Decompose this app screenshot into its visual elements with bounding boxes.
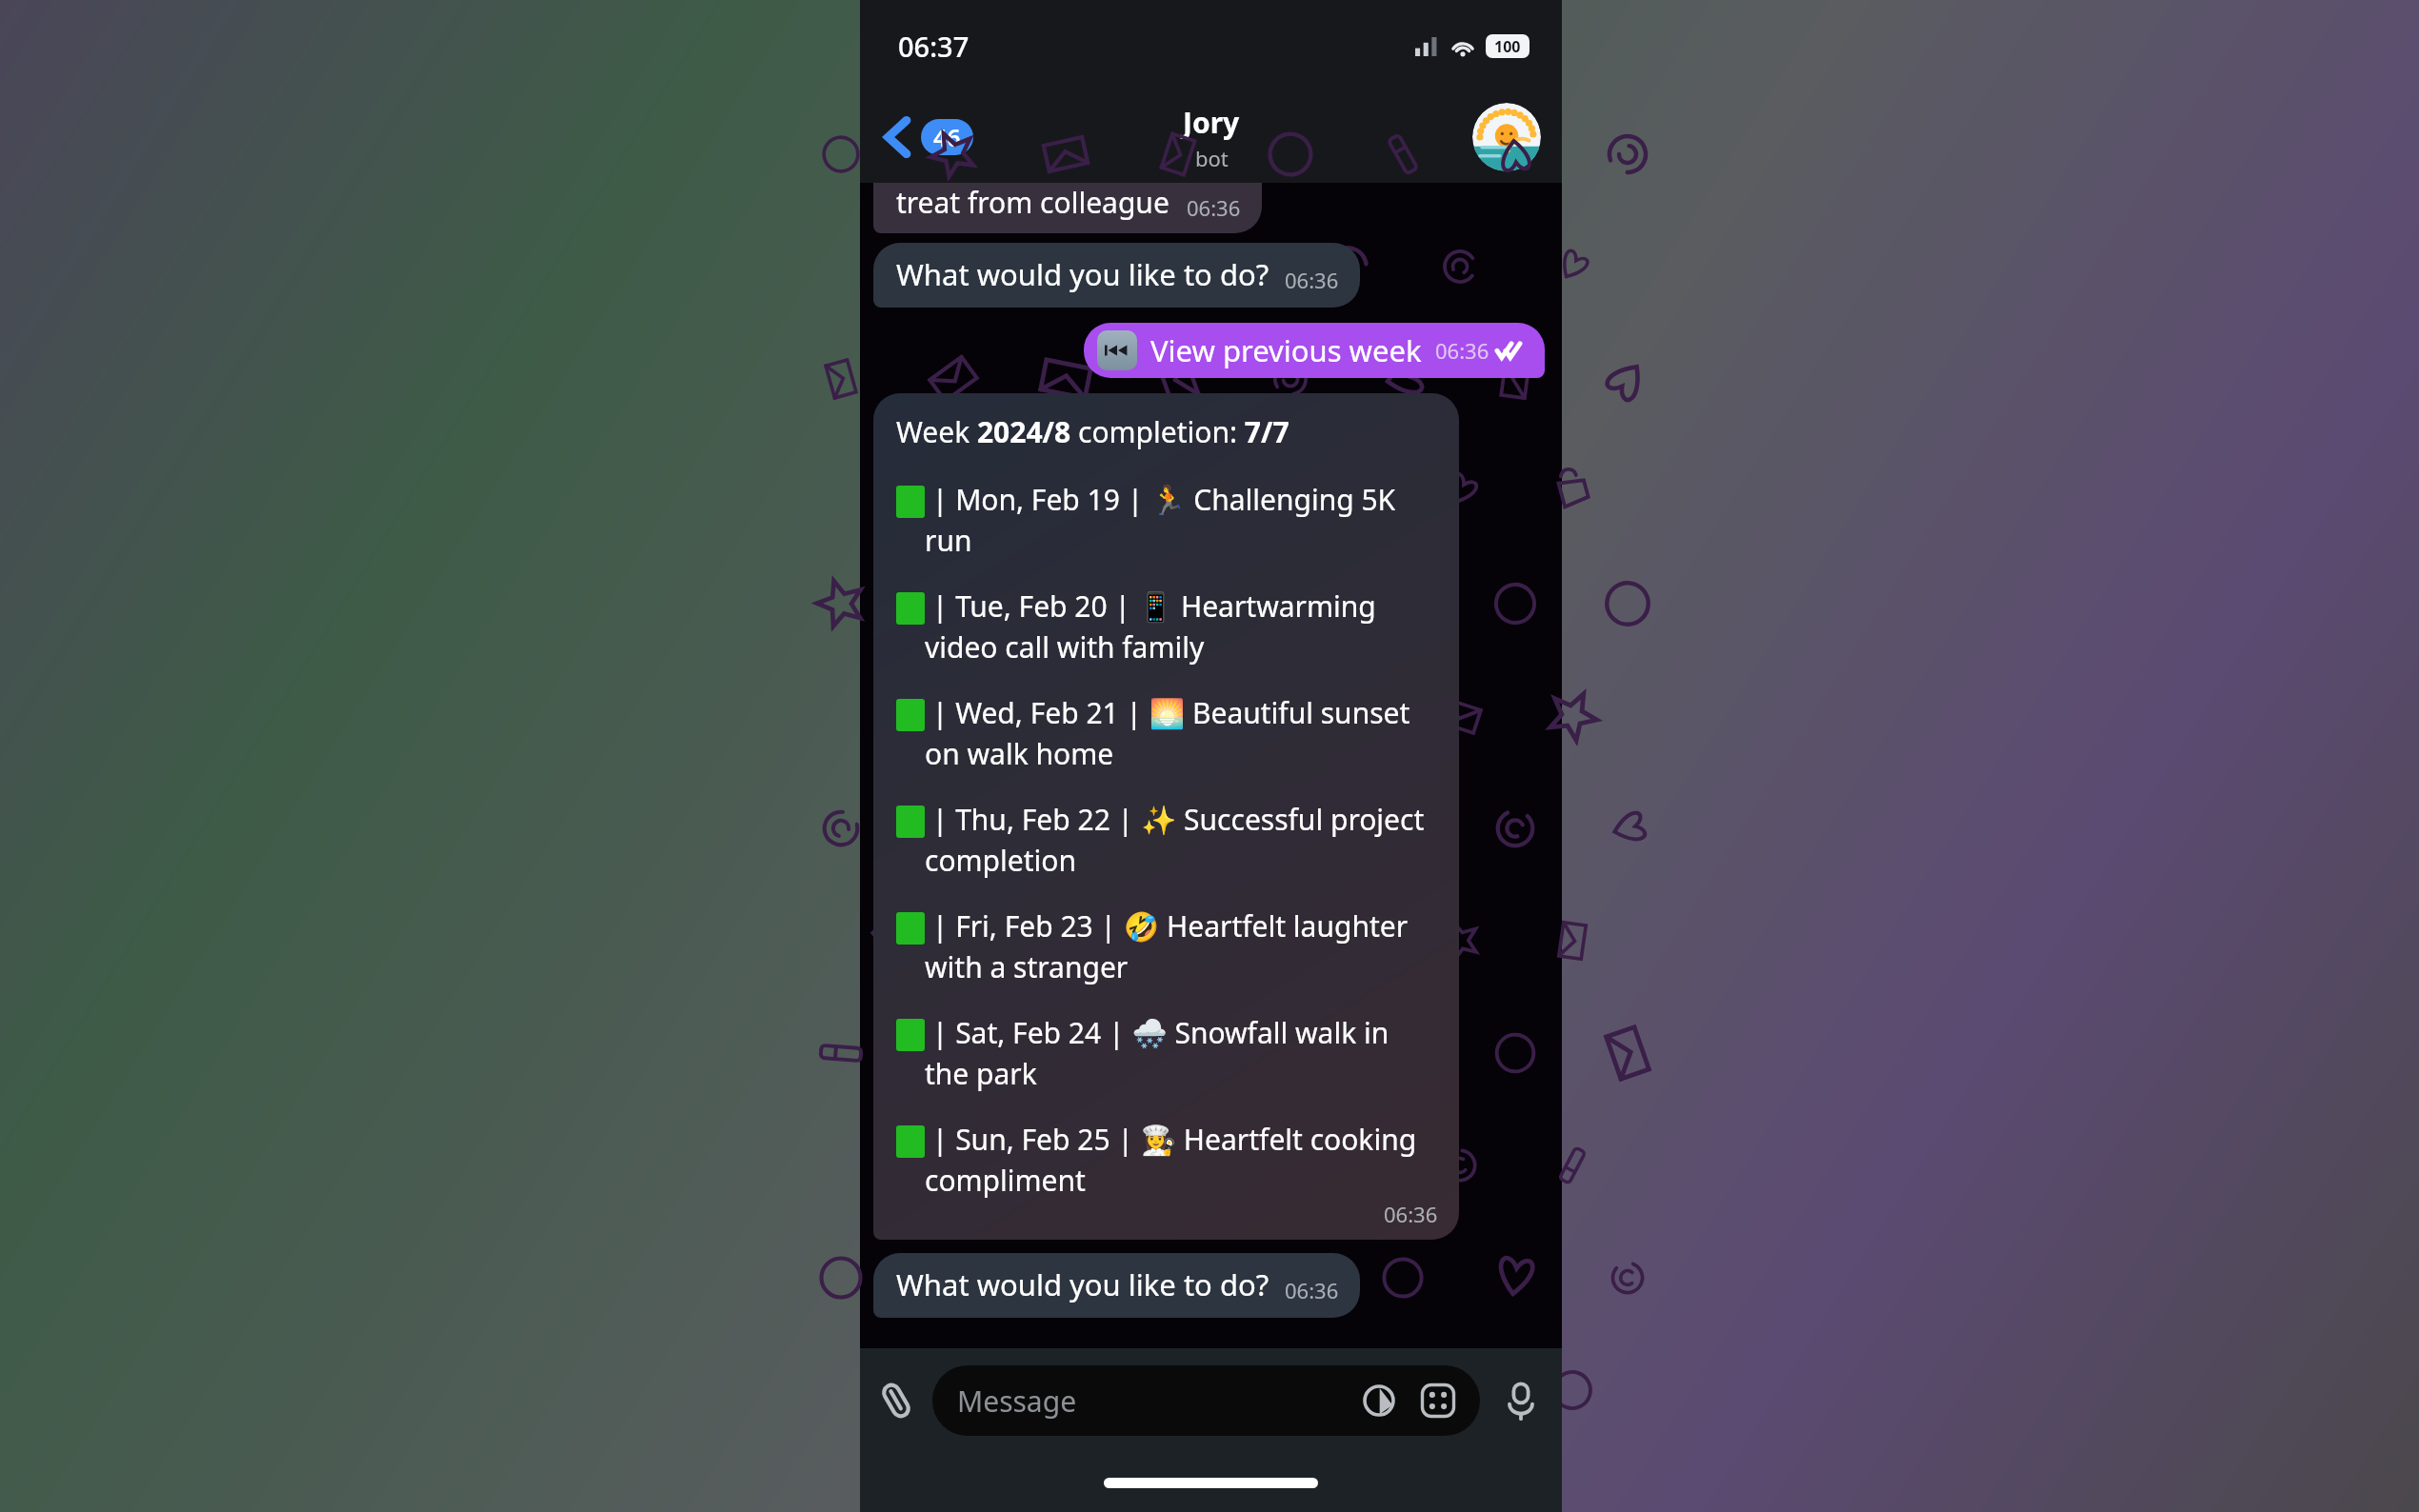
button[interactable]: Attach [860,1364,932,1437]
staticText: 06:36 [1187,193,1241,222]
staticText: | Tue, Feb 20 | 📱 Heartwarming video cal… [925,587,1438,666]
button[interactable]: treat from colleague [873,183,1262,233]
button[interactable]: Message [932,1365,1480,1436]
staticText: 100 [1494,36,1521,57]
staticText: treat from colleague [896,183,1170,222]
button[interactable]: Back, 46 unread [877,110,981,164]
staticText: 06:36 [1384,1200,1438,1228]
staticText: What would you like to do? [896,1264,1269,1304]
staticText: 46 [933,121,961,153]
button[interactable]: Bot commands [1413,1376,1463,1425]
staticText: | Fri, Feb 23 | 🤣 Heartfelt laughter wit… [925,906,1438,986]
button[interactable]: Voice message [1480,1360,1562,1442]
staticText: 06:37 [898,28,970,65]
staticText: 06:36 [1285,1276,1339,1304]
staticText: What would you like to do? [896,254,1269,294]
staticText: Jory [1183,103,1240,142]
staticText: | Wed, Feb 21 | 🌅 Beautiful sunset on wa… [925,693,1438,773]
button[interactable]: Stickers [1354,1376,1404,1425]
button[interactable]: What would you like to do? [873,1253,1360,1318]
staticText: | Mon, Feb 19 | 🏃 Challenging 5K run [925,480,1438,560]
staticText: bot [1195,144,1229,172]
staticText: Message [957,1382,1077,1421]
staticText: 06:36 [1435,336,1489,365]
button[interactable]: What would you like to do? [873,243,1360,308]
staticText: View previous week [1150,330,1422,370]
staticText: | Sun, Feb 25 | 👩‍🍳 Heartfelt cooking co… [925,1120,1438,1200]
button[interactable]: Profile picture [1472,103,1541,171]
staticText: | Thu, Feb 22 | ✨ Successful project com… [925,800,1438,880]
button[interactable]: View previous week [1084,323,1545,378]
staticText: | Sat, Feb 24 | 🌨 Snowfall walk in the p… [925,1013,1438,1093]
button[interactable]: Week 2024/8 completion: 7/7 [873,393,1459,1240]
staticText: Week 2024/8 completion: 7/7 [896,412,1289,451]
button[interactable]: Jory [1183,103,1240,172]
staticText: 06:36 [1285,266,1339,294]
